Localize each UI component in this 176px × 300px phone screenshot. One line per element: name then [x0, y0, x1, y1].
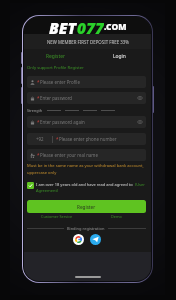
button[interactable]: * — [27, 92, 146, 104]
button[interactable]: Register — [27, 200, 146, 213]
button[interactable]: Sign in with Google — [73, 234, 84, 245]
staticText: Only support Profile Register — [27, 65, 84, 71]
staticText: Please enter phone number — [59, 136, 117, 142]
staticText: Strength — [27, 108, 43, 113]
button[interactable]: Register — [24, 49, 87, 63]
button[interactable]: Show password — [137, 119, 143, 125]
button[interactable]: * — [27, 116, 146, 128]
button[interactable]: Demo — [111, 214, 122, 219]
staticText: NEW MEMBER FIRST DEPOSIT FREE 33% — [47, 39, 129, 45]
staticText: * — [37, 95, 40, 101]
staticText: Enter password — [40, 95, 73, 101]
button[interactable]: Show password — [137, 95, 143, 101]
staticText: Agreement) — [36, 188, 59, 193]
button[interactable]: +92 — [27, 133, 146, 145]
staticText: Register — [77, 204, 96, 210]
staticText: I am over 18 years old and have read and… — [36, 182, 133, 187]
staticText: Please enter your real name — [40, 152, 98, 158]
staticText: +92 — [36, 136, 44, 142]
staticText: Register — [46, 53, 65, 60]
button[interactable]: * — [27, 76, 146, 88]
staticText: * — [56, 136, 59, 142]
staticText: 077 — [77, 17, 104, 34]
staticText: Must be in the same name as your withdra… — [27, 163, 144, 175]
staticText: * — [37, 79, 40, 85]
staticText: Enter password again — [40, 119, 85, 125]
staticText: * — [37, 119, 40, 125]
button[interactable]: * — [27, 149, 146, 161]
button[interactable]: Sign in with Telegram — [90, 234, 101, 245]
staticText: Binding registration — [67, 226, 105, 231]
staticText: (User — [135, 182, 145, 187]
staticText: Please enter Profile — [40, 79, 80, 85]
button[interactable]: Customer Service — [41, 214, 73, 219]
staticText: * — [37, 152, 40, 158]
button[interactable]: Login — [87, 49, 151, 63]
staticText: Login — [113, 53, 126, 60]
button[interactable]: I am over 18 years old and have read and… — [27, 182, 146, 193]
staticText: .COM — [104, 21, 127, 33]
staticText: BET — [49, 17, 77, 34]
